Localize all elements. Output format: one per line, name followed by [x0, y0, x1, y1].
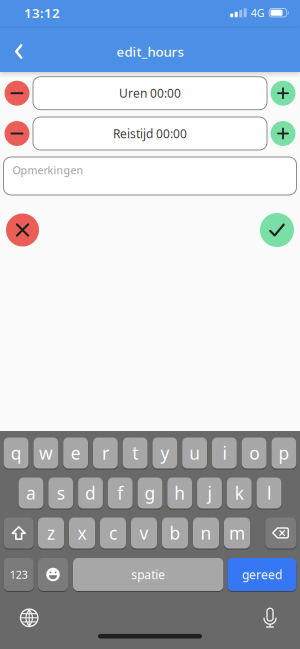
button[interactable]: h	[167, 477, 192, 508]
button[interactable]: q	[4, 437, 29, 468]
button[interactable]: Confirm	[260, 213, 294, 247]
button[interactable]: u	[182, 437, 207, 468]
staticText: f	[117, 481, 123, 504]
button[interactable]: 123	[4, 558, 34, 591]
button[interactable]: Decrease	[4, 81, 29, 106]
staticText: v	[139, 521, 148, 544]
button[interactable]: n	[193, 517, 219, 548]
staticText: n	[200, 521, 211, 544]
staticText: b	[169, 521, 180, 544]
button[interactable]: t	[123, 437, 148, 468]
staticText: x	[77, 521, 86, 544]
staticText: s	[57, 481, 65, 504]
button[interactable]: c	[100, 517, 126, 548]
button[interactable]: Uren 00:00	[33, 77, 267, 110]
button[interactable]: k	[227, 477, 252, 508]
staticText: k	[235, 481, 244, 504]
staticText: Opmerkingen	[12, 163, 83, 177]
staticText: o	[249, 441, 259, 464]
button[interactable]: v	[131, 517, 157, 548]
staticText: j	[207, 481, 211, 504]
button[interactable]: Shift	[4, 517, 34, 548]
button[interactable]: y	[152, 437, 177, 468]
button[interactable]: Decrease	[4, 121, 29, 146]
staticText: spatie	[131, 566, 165, 582]
button[interactable]: Increase	[270, 81, 295, 106]
staticText: u	[189, 441, 200, 464]
staticText: t	[132, 441, 138, 464]
button[interactable]: x	[69, 517, 95, 548]
button[interactable]: z	[38, 517, 64, 548]
staticText: 123	[10, 567, 28, 582]
button[interactable]: Delete	[265, 517, 296, 548]
staticText: 4G	[251, 6, 265, 20]
button[interactable]: e	[63, 437, 88, 468]
staticText: y	[160, 441, 169, 464]
staticText: w	[39, 441, 53, 464]
button[interactable]: w	[33, 437, 58, 468]
staticText: g	[144, 481, 155, 504]
staticText: Reistijd 00:00	[113, 125, 187, 141]
button[interactable]: d	[78, 477, 103, 508]
staticText: c	[109, 521, 117, 544]
staticText: edit_hours	[116, 43, 183, 60]
button[interactable]: j	[197, 477, 222, 508]
button[interactable]: o	[242, 437, 267, 468]
button[interactable]: g	[138, 477, 162, 508]
staticText: q	[11, 441, 22, 464]
staticText: r	[102, 441, 109, 464]
button[interactable]: b	[162, 517, 188, 548]
button[interactable]: Reistijd 00:00	[33, 117, 267, 150]
staticText: 13:12	[24, 4, 60, 22]
staticText: e	[71, 441, 81, 464]
button[interactable]: a	[19, 477, 43, 508]
button[interactable]: Increase	[270, 121, 295, 146]
button[interactable]: s	[48, 477, 73, 508]
button[interactable]: Next keyboard	[12, 601, 46, 634]
button[interactable]: f	[108, 477, 133, 508]
button[interactable]: Cancel	[6, 213, 39, 246]
button[interactable]: spatie	[73, 558, 223, 591]
button[interactable]: i	[212, 437, 237, 468]
staticText: z	[47, 521, 55, 544]
staticText: h	[174, 481, 185, 504]
staticText: l	[267, 481, 271, 504]
staticText: i	[222, 441, 226, 464]
staticText: Uren 00:00	[119, 85, 181, 101]
button[interactable]: Back	[0, 31, 38, 69]
button[interactable]: r	[93, 437, 118, 468]
staticText: d	[85, 481, 96, 504]
button[interactable]: l	[257, 477, 281, 508]
button[interactable]: Emoji	[38, 558, 68, 591]
button[interactable]: gereed	[227, 558, 296, 591]
staticText: a	[26, 481, 36, 504]
staticText: gereed	[242, 566, 282, 582]
button[interactable]: Opmerkingen	[3, 157, 296, 195]
button[interactable]: p	[271, 437, 296, 468]
staticText: p	[278, 441, 289, 464]
staticText: m	[229, 521, 245, 544]
button[interactable]: m	[224, 517, 250, 548]
button[interactable]: Dictate	[252, 600, 288, 636]
